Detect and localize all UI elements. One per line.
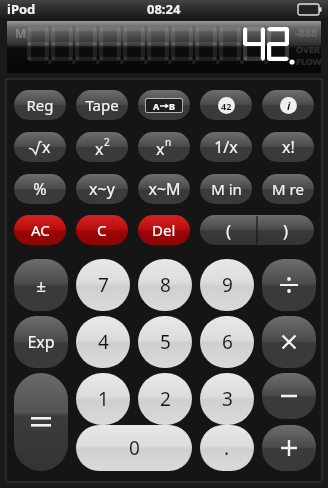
button[interactable]: ): [257, 215, 314, 245]
staticText: A: [153, 100, 160, 112]
staticText: M: [15, 25, 27, 41]
staticText: 4: [98, 329, 109, 355]
button[interactable]: ±: [14, 259, 68, 311]
button[interactable]: M re: [262, 174, 314, 204]
other: Divide: [262, 259, 316, 311]
other: Minus: [262, 373, 316, 419]
staticText: M re: [272, 179, 304, 199]
button[interactable]: [262, 259, 316, 311]
staticText: 1: [98, 386, 109, 412]
button[interactable]: C: [76, 215, 128, 245]
staticText: x!: [282, 136, 295, 158]
other: A to B convert: [138, 90, 190, 120]
staticText: x: [95, 138, 104, 160]
staticText: Del: [152, 220, 176, 240]
button[interactable]: AC: [14, 215, 66, 245]
staticText: -888: [295, 25, 318, 40]
button[interactable]: Tape: [76, 90, 128, 120]
button[interactable]: [262, 373, 316, 419]
staticText: 8: [160, 272, 171, 298]
staticText: %: [33, 178, 47, 200]
button[interactable]: 5: [138, 316, 192, 368]
button[interactable]: 9: [200, 259, 254, 311]
button[interactable]: 1/x: [200, 132, 252, 162]
staticText: x: [42, 136, 51, 158]
button[interactable]: x~M: [138, 174, 190, 204]
button[interactable]: A: [138, 90, 190, 120]
staticText: 6: [222, 329, 233, 355]
staticText: i: [287, 98, 291, 113]
staticText: x~y: [89, 178, 115, 200]
button[interactable]: %: [14, 174, 66, 204]
staticText: 2: [160, 386, 171, 412]
staticText: M in: [211, 179, 242, 199]
staticText: ±: [36, 274, 46, 297]
staticText: Exp: [27, 331, 55, 353]
staticText: (: [226, 219, 232, 242]
staticText: 1/x: [214, 136, 238, 158]
button[interactable]: 7: [76, 259, 130, 311]
button[interactable]: 6: [200, 316, 254, 368]
button[interactable]: x!: [262, 132, 314, 162]
other: Constant 42: [200, 90, 252, 120]
button[interactable]: i: [262, 90, 314, 120]
button[interactable]: 0: [76, 425, 192, 471]
button[interactable]: M in: [200, 174, 252, 204]
staticText: 42: [221, 100, 232, 112]
button[interactable]: .: [200, 425, 254, 471]
button[interactable]: 42: [200, 90, 252, 120]
button[interactable]: 4: [76, 316, 130, 368]
staticText: 9: [222, 272, 233, 298]
staticText: Reg: [26, 95, 54, 115]
button[interactable]: [262, 316, 316, 368]
button[interactable]: Exp: [14, 316, 68, 368]
other: Plus: [262, 425, 316, 471]
button[interactable]: 1: [76, 373, 130, 425]
button[interactable]: [262, 425, 316, 471]
staticText: AC: [31, 220, 50, 240]
staticText: C: [97, 220, 107, 240]
staticText: x~M: [148, 178, 181, 200]
other: Info: [262, 90, 314, 120]
button[interactable]: x~y: [76, 174, 128, 204]
staticText: 08:24: [147, 0, 181, 18]
button[interactable]: Reg: [14, 90, 66, 120]
staticText: 3: [222, 386, 233, 412]
staticText: ): [283, 219, 289, 242]
staticText: Tape: [85, 95, 119, 115]
staticText: iPod: [7, 0, 36, 18]
button[interactable]: Del: [138, 215, 190, 245]
button[interactable]: x: [76, 132, 128, 162]
staticText: B: [169, 100, 175, 112]
button[interactable]: x: [14, 132, 66, 162]
staticText: x: [156, 138, 165, 160]
staticText: FLOW: [296, 55, 321, 67]
button[interactable]: 2: [138, 373, 192, 425]
button[interactable]: x: [138, 132, 190, 162]
staticText: 7: [98, 272, 109, 298]
staticText: OVER: [296, 43, 320, 55]
other: Multiply: [262, 316, 316, 368]
button[interactable]: 3: [200, 373, 254, 425]
button[interactable]: 8: [138, 259, 192, 311]
button[interactable]: (: [200, 215, 257, 245]
staticText: 0: [129, 435, 140, 461]
staticText: 5: [160, 329, 171, 355]
button[interactable]: Equals: [14, 373, 68, 471]
staticText: .: [224, 435, 230, 461]
staticText: n: [165, 135, 172, 149]
staticText: 2: [104, 135, 110, 149]
